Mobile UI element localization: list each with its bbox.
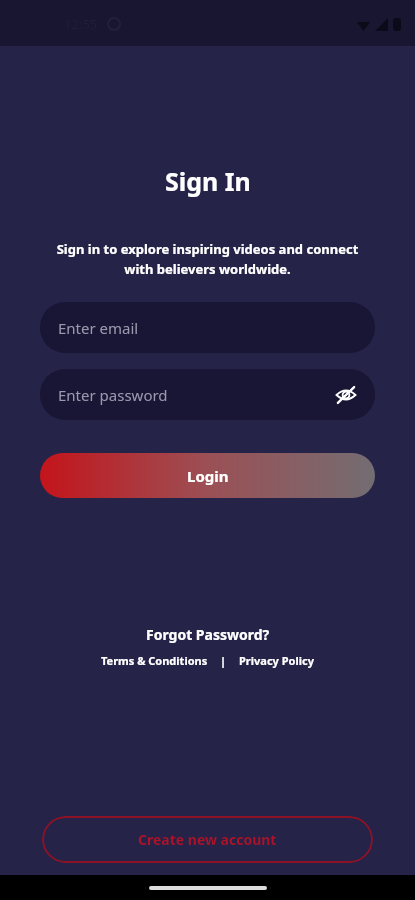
button[interactable]: Forgot Password? <box>140 623 276 646</box>
button[interactable]: Create new account <box>42 816 373 863</box>
staticText: Sign in to explore inspiring videos and … <box>44 240 371 278</box>
staticText: Privacy Policy <box>239 653 314 668</box>
staticText: Enter email <box>58 318 139 338</box>
staticText: Create new account <box>138 830 277 849</box>
button[interactable]: Enter email <box>40 302 375 353</box>
staticText: Login <box>187 466 229 486</box>
staticText: Sign In <box>165 164 251 198</box>
button[interactable]: Enter password <box>40 369 375 420</box>
button[interactable]: Privacy Policy <box>236 651 317 670</box>
staticText: | <box>220 653 227 668</box>
staticText: Enter password <box>58 385 168 405</box>
button[interactable]: Show password <box>331 380 361 410</box>
staticText: Forgot Password? <box>146 625 270 644</box>
button[interactable]: Login <box>40 453 375 498</box>
staticText: Terms & Conditions <box>101 653 208 668</box>
button[interactable]: Terms & Conditions <box>98 651 211 670</box>
